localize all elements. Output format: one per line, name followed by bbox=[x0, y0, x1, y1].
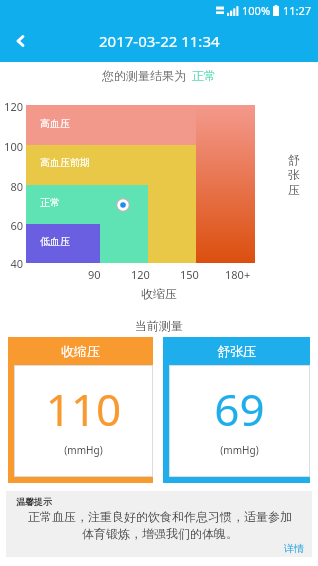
staticText: 正常 bbox=[40, 196, 60, 209]
button[interactable]: Back bbox=[0, 20, 42, 62]
staticText: (mmHg) bbox=[14, 443, 153, 457]
staticText: 69 bbox=[169, 379, 310, 439]
staticText: 您的测量结果为 bbox=[102, 68, 186, 83]
staticText: 90 bbox=[88, 267, 101, 282]
staticText: 收缩压 bbox=[0, 286, 318, 301]
staticText: 2017-03-22 11:34 bbox=[99, 31, 220, 51]
staticText: 100 bbox=[2, 139, 23, 154]
staticText: 收缩压 bbox=[8, 343, 153, 359]
button[interactable]: 收缩压 bbox=[8, 337, 153, 483]
staticText: 压 bbox=[288, 182, 300, 197]
staticText: 120 bbox=[2, 99, 23, 114]
staticText: 110 bbox=[14, 379, 153, 439]
staticText: 150 bbox=[180, 267, 199, 282]
staticText: 180+ bbox=[225, 267, 251, 282]
staticText: 11:27 bbox=[283, 3, 312, 18]
staticText: (mmHg) bbox=[169, 443, 310, 457]
staticText: 80 bbox=[2, 179, 23, 194]
staticText: 高血压前期 bbox=[40, 156, 90, 169]
staticText: 低血压 bbox=[40, 235, 70, 248]
staticText: 120 bbox=[131, 267, 150, 282]
staticText: 正常 bbox=[192, 68, 216, 83]
staticText: 舒张压 bbox=[163, 343, 310, 359]
staticText: 高血压 bbox=[40, 117, 70, 130]
staticText: 当前测量 bbox=[0, 318, 318, 333]
staticText: 正常血压，注重良好的饮食和作息习惯，适量参加体育锻炼，增强我们的体魄。 bbox=[24, 509, 296, 542]
staticText: 详情 bbox=[284, 542, 304, 555]
button[interactable]: 舒张压 bbox=[163, 337, 310, 483]
staticText: 60 bbox=[2, 218, 23, 233]
staticText: 40 bbox=[2, 256, 23, 271]
button[interactable]: 温馨提示 bbox=[6, 491, 312, 557]
staticText: 100% bbox=[242, 3, 271, 18]
staticText: 温馨提示 bbox=[16, 496, 52, 507]
staticText: 舒 bbox=[288, 152, 300, 167]
staticText: 张 bbox=[288, 167, 300, 182]
